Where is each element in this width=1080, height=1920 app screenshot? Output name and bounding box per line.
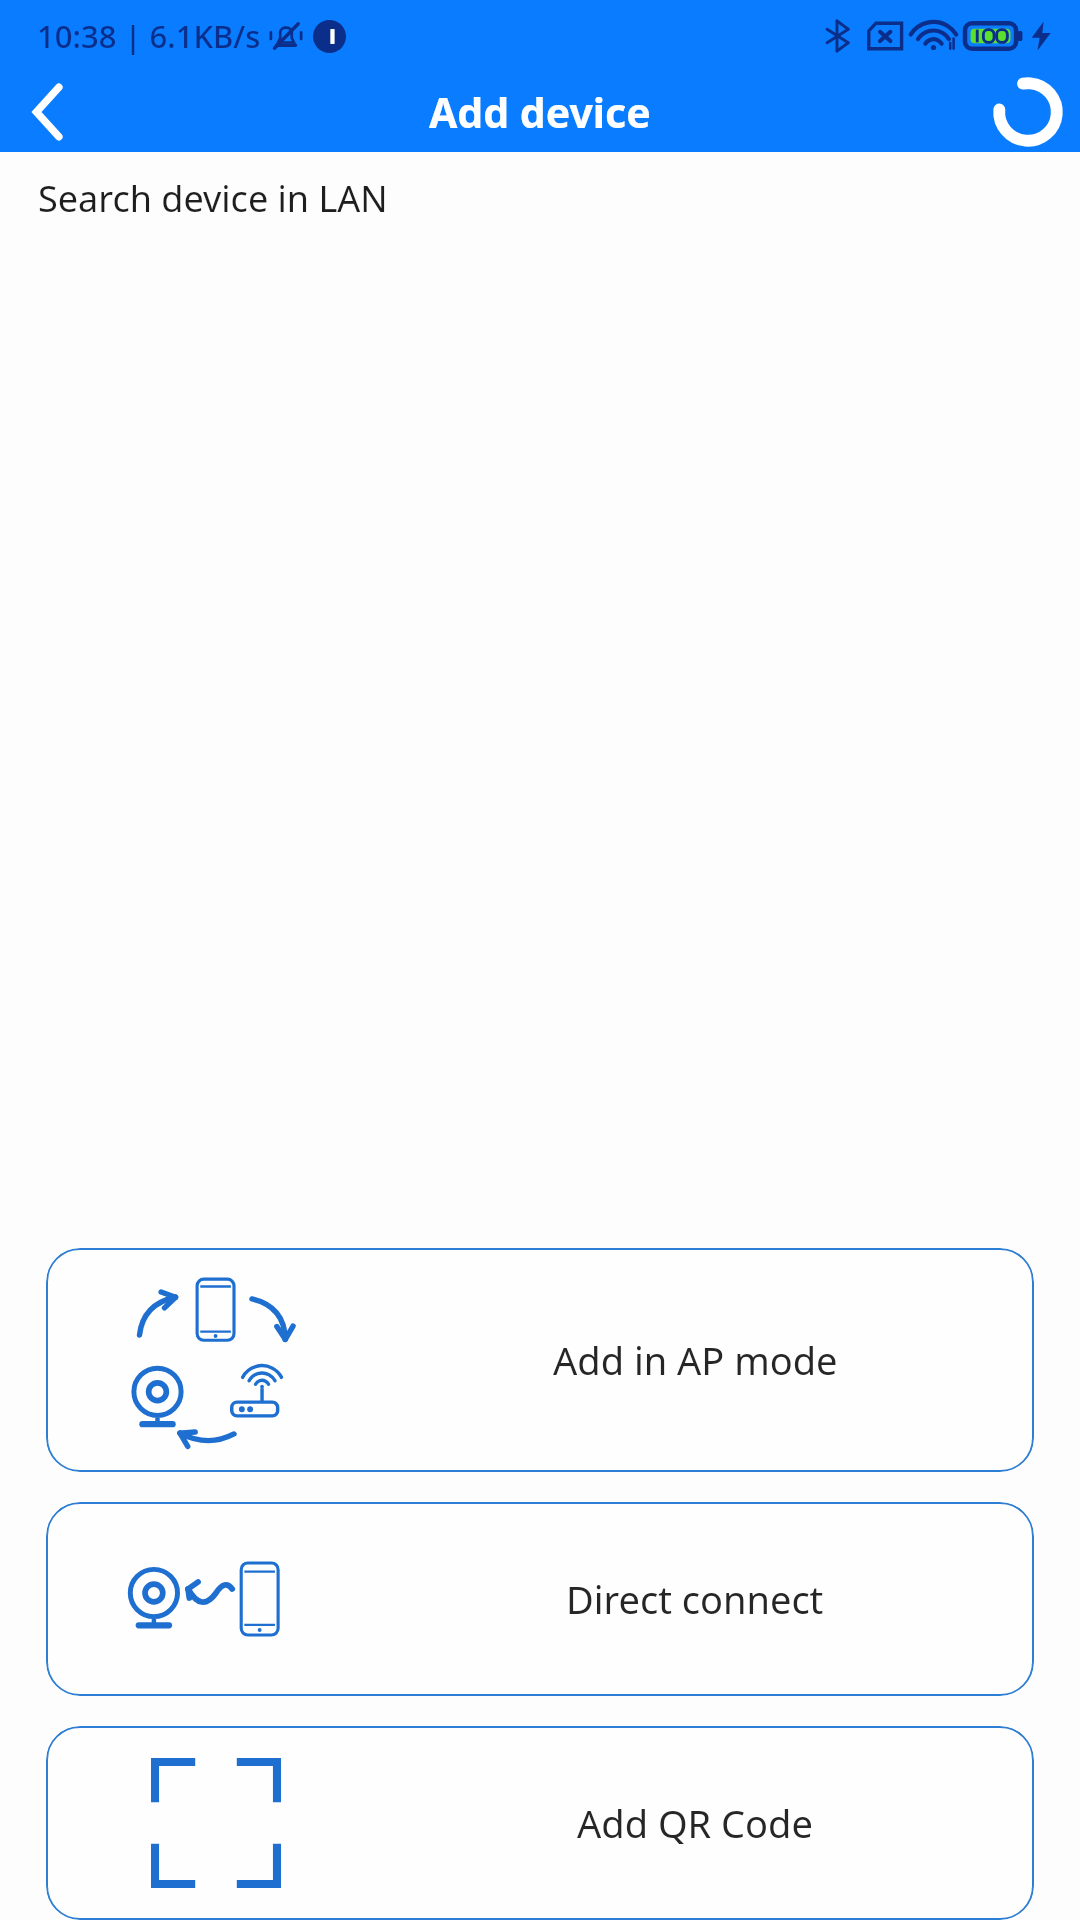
button[interactable]: Add QR Code <box>46 1726 1034 1920</box>
staticText: Add device <box>429 84 651 140</box>
staticText: Direct connect <box>566 1573 824 1625</box>
button[interactable]: Back <box>0 72 96 152</box>
staticText: Search device in LAN <box>38 174 388 223</box>
staticText: Add in AP mode <box>553 1334 838 1386</box>
button[interactable]: Refresh <box>976 72 1080 152</box>
button[interactable]: Add in AP mode <box>46 1248 1034 1472</box>
button[interactable]: Direct connect <box>46 1502 1034 1696</box>
staticText: 10:38 | 6.1KB/s <box>37 15 261 57</box>
staticText: Add QR Code <box>577 1797 813 1849</box>
